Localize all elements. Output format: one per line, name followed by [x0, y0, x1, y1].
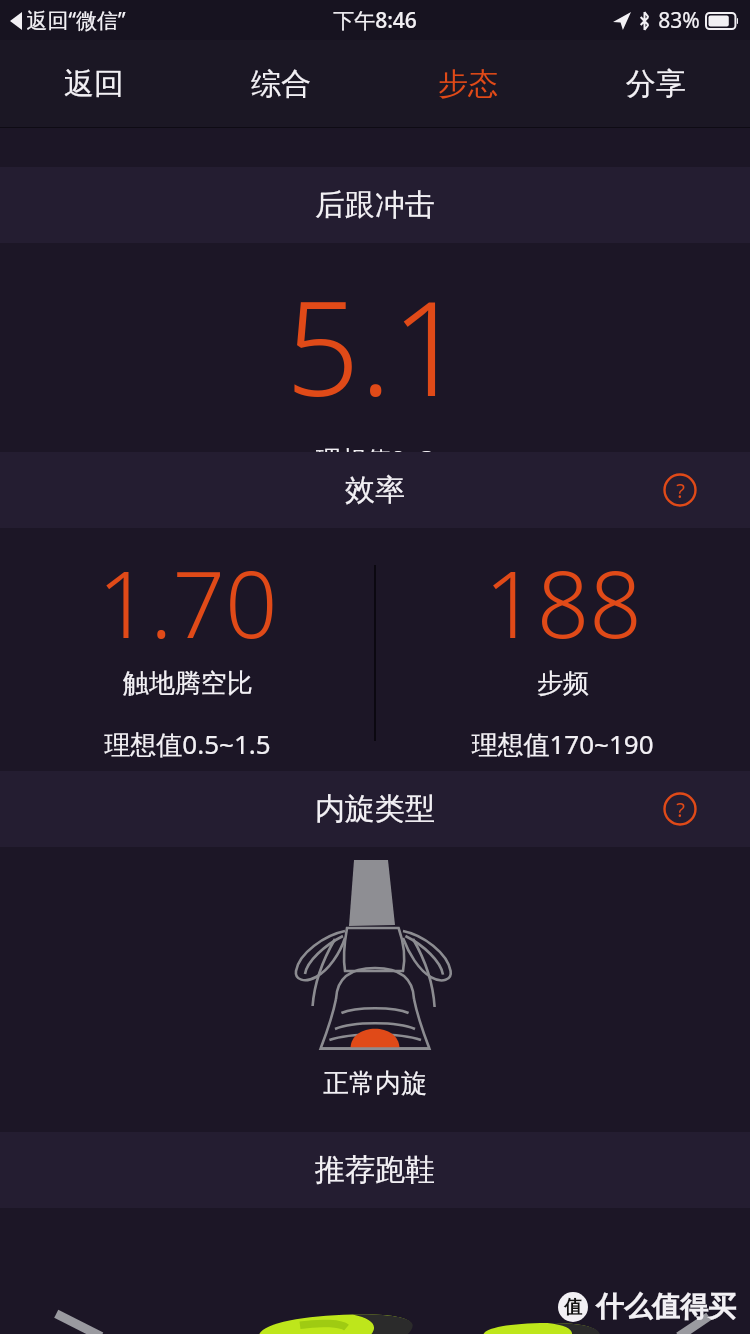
staticText: 值 [564, 1296, 582, 1319]
staticText: 触地腾空比 [123, 667, 253, 700]
staticText: 下午8:46 [333, 6, 417, 35]
staticText: 返回“微信” [26, 6, 126, 35]
button[interactable]: Help [658, 468, 702, 512]
staticText: ? [676, 796, 685, 823]
staticText: 188 [484, 540, 642, 665]
staticText: 返回 [64, 65, 124, 103]
staticText: 步频 [537, 667, 589, 700]
staticText: 什么值得买 [596, 1289, 736, 1324]
staticText: 步态 [438, 65, 498, 103]
button[interactable]: 综合 [187, 40, 374, 128]
staticText: 综合 [251, 65, 311, 103]
staticText: 5.1 [285, 257, 466, 434]
button[interactable]: 分享 [562, 40, 750, 128]
staticText: 83% [658, 6, 700, 35]
staticText: 内旋类型 [315, 790, 435, 828]
staticText: ? [676, 477, 685, 504]
button[interactable]: Help [658, 787, 702, 831]
staticText: 分享 [626, 65, 686, 103]
staticText: 推荐跑鞋 [315, 1151, 435, 1189]
button[interactable]: 步态 [374, 40, 562, 128]
button[interactable]: 返回 [0, 40, 187, 128]
staticText: 正常内旋 [323, 1067, 427, 1100]
staticText: 后跟冲击 [315, 186, 435, 224]
staticText: 1.70 [97, 540, 278, 665]
staticText: 效率 [345, 471, 405, 509]
staticText: 理想值170~190 [471, 726, 654, 762]
staticText: 理想值0.5~1.5 [104, 726, 271, 762]
staticText: 理想值0~3 [316, 442, 434, 452]
